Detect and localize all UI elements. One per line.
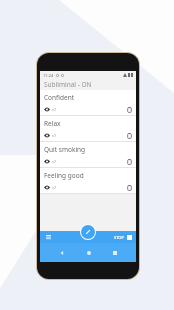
other: Note xyxy=(127,107,132,113)
button[interactable]: Edit xyxy=(81,225,95,239)
button[interactable]: Feeling good xyxy=(40,168,136,194)
staticText: Feeling good xyxy=(44,171,84,180)
staticText: Subliminal - ON xyxy=(44,80,92,89)
other: Note xyxy=(127,185,132,191)
staticText: x7 xyxy=(52,159,57,164)
button[interactable]: STOP xyxy=(114,235,124,240)
button[interactable]: Menu xyxy=(44,233,52,241)
other: Note xyxy=(127,133,132,139)
button[interactable]: Recents xyxy=(109,247,120,258)
staticText: STOP xyxy=(114,235,124,240)
button[interactable]: Confident xyxy=(40,90,136,116)
staticText: Relax xyxy=(44,119,61,128)
staticText: x7 xyxy=(52,107,57,112)
button[interactable]: Relax xyxy=(40,116,136,142)
staticText: Quit smoking xyxy=(44,145,86,154)
button[interactable]: Quit smoking xyxy=(40,142,136,168)
staticText: x7 xyxy=(52,133,57,138)
button[interactable]: Back xyxy=(56,247,67,258)
staticText: Confident xyxy=(44,93,74,102)
staticText: x7 xyxy=(52,185,57,190)
button[interactable]: Home xyxy=(83,247,94,258)
staticText: 11:24 xyxy=(43,73,54,78)
other: Note xyxy=(127,159,132,165)
